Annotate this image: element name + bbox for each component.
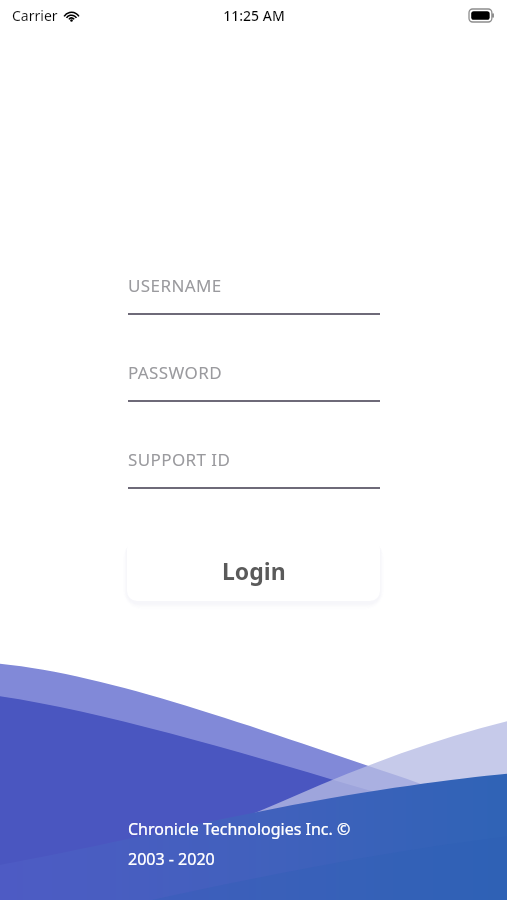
button[interactable]: SUPPORT ID: [128, 448, 380, 489]
button[interactable]: USERNAME: [128, 274, 380, 315]
staticText: 11:25 AM: [223, 6, 285, 25]
staticText: SUPPORT ID: [128, 448, 231, 471]
staticText: PASSWORD: [128, 361, 223, 384]
staticText: 2003 - 2020: [128, 848, 215, 870]
button[interactable]: PASSWORD: [128, 361, 380, 402]
staticText: Carrier: [12, 6, 58, 25]
button[interactable]: Login: [127, 539, 380, 601]
staticText: USERNAME: [128, 274, 222, 297]
staticText: Chronicle Technologies Inc. ©: [128, 818, 351, 840]
staticText: Login: [222, 555, 286, 586]
